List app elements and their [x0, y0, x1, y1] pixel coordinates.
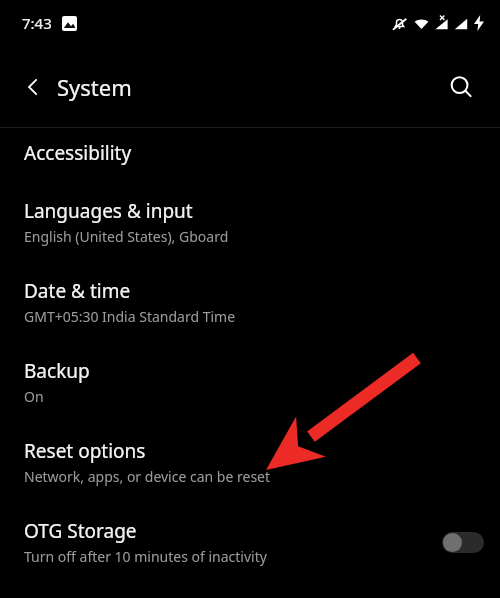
staticText: Turn off after 10 minutes of inactivity [24, 547, 267, 566]
button[interactable]: Search [440, 66, 482, 108]
button[interactable]: OTG Storage toggle [442, 532, 484, 553]
staticText: Languages & input [24, 198, 193, 224]
staticText: English (United States), Gboard [24, 227, 229, 246]
staticText: Network, apps, or device can be reset [24, 467, 271, 486]
staticText: On [24, 387, 44, 406]
button[interactable]: Backup [0, 342, 500, 422]
button[interactable]: Date & time [0, 262, 500, 342]
staticText: 7:43 [22, 13, 52, 33]
staticText: Backup [24, 358, 90, 384]
staticText: Reset options [24, 438, 146, 464]
button[interactable]: Languages & input [0, 182, 500, 262]
staticText: OTG Storage [24, 518, 137, 544]
staticText: GMT+05:30 India Standard Time [24, 307, 236, 326]
button[interactable]: OTG Storage [0, 502, 500, 582]
button[interactable]: Accessibility [0, 128, 500, 182]
button[interactable]: Reset options [0, 422, 500, 502]
button[interactable]: Back [12, 66, 54, 108]
staticText: Accessibility [24, 140, 132, 166]
staticText: Date & time [24, 278, 131, 304]
staticText: System [57, 72, 132, 102]
